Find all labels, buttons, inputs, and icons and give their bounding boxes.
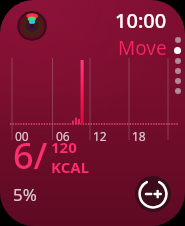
staticText: 06: [56, 128, 70, 144]
staticText: 00: [15, 128, 29, 144]
button[interactable]: Adjust goal: [135, 176, 171, 212]
staticText: 12: [93, 128, 107, 144]
button[interactable]: Activity rings: [17, 11, 47, 41]
staticText: 10:00: [115, 7, 167, 34]
staticText: 18: [132, 128, 146, 144]
staticText: Move: [118, 35, 167, 61]
staticText: 5%: [13, 183, 37, 206]
staticText: 120: [51, 137, 77, 157]
staticText: 6/: [13, 131, 48, 180]
staticText: KCAL: [51, 157, 90, 177]
